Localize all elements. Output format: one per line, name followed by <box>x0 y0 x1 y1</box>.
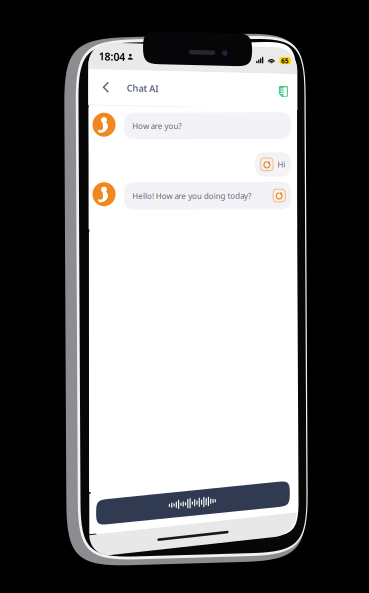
button[interactable]: New note <box>189 31 207 55</box>
staticText: Hello! How are you doing today? <box>44 81 165 92</box>
staticText: Hi <box>192 51 200 61</box>
